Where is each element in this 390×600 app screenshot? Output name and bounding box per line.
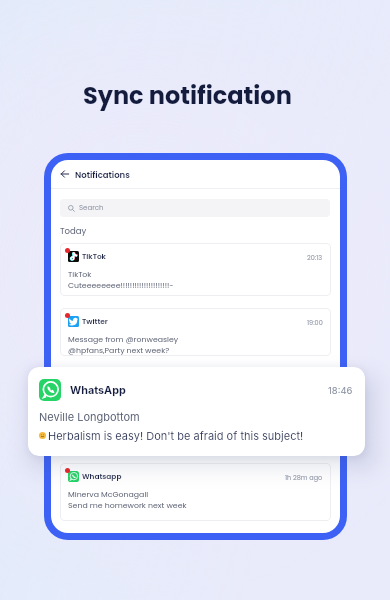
button[interactable]: Whatsapp (60, 368, 331, 421)
staticText: TikTok (82, 251, 106, 261)
staticText: Neville Longbottom (68, 394, 143, 405)
staticText: 19:00 (307, 318, 323, 327)
button[interactable]: Back (58, 167, 72, 181)
staticText: Minerva McGonagall (68, 489, 149, 500)
staticText: 20:13 (307, 253, 323, 262)
staticText: Send me homework next week (68, 500, 187, 511)
staticText: Cuteeeeeeee!!!!!!!!!!!!!!!!!!!!!~ (68, 280, 174, 291)
button[interactable]: Search (60, 199, 330, 217)
staticText: Neville Longbottom (39, 410, 140, 423)
staticText: Whatsapp (82, 471, 122, 481)
staticText: 1h 28m ago (285, 473, 323, 482)
button[interactable]: TikTok (60, 243, 331, 296)
staticText: Herbalism is easy! (68, 405, 139, 416)
staticText: TikTok (68, 269, 92, 280)
staticText: Twitter (82, 316, 108, 326)
button[interactable]: WhatsApp (28, 367, 365, 456)
staticText: Today (60, 225, 87, 237)
staticText: Search (79, 203, 104, 213)
staticText: Sync notification (83, 79, 292, 113)
staticText: Message from @ronweasley (68, 334, 179, 345)
staticText: Notifications (75, 169, 130, 181)
staticText: Herbalism is easy! Don't be afraid of th… (48, 429, 304, 442)
button[interactable]: Whatsapp (60, 463, 331, 521)
staticText: WhatsApp (70, 384, 126, 397)
staticText: 18:46 (328, 385, 353, 396)
staticText: @hpfans,Party next week? (68, 345, 170, 356)
button[interactable]: Twitter (60, 308, 331, 356)
